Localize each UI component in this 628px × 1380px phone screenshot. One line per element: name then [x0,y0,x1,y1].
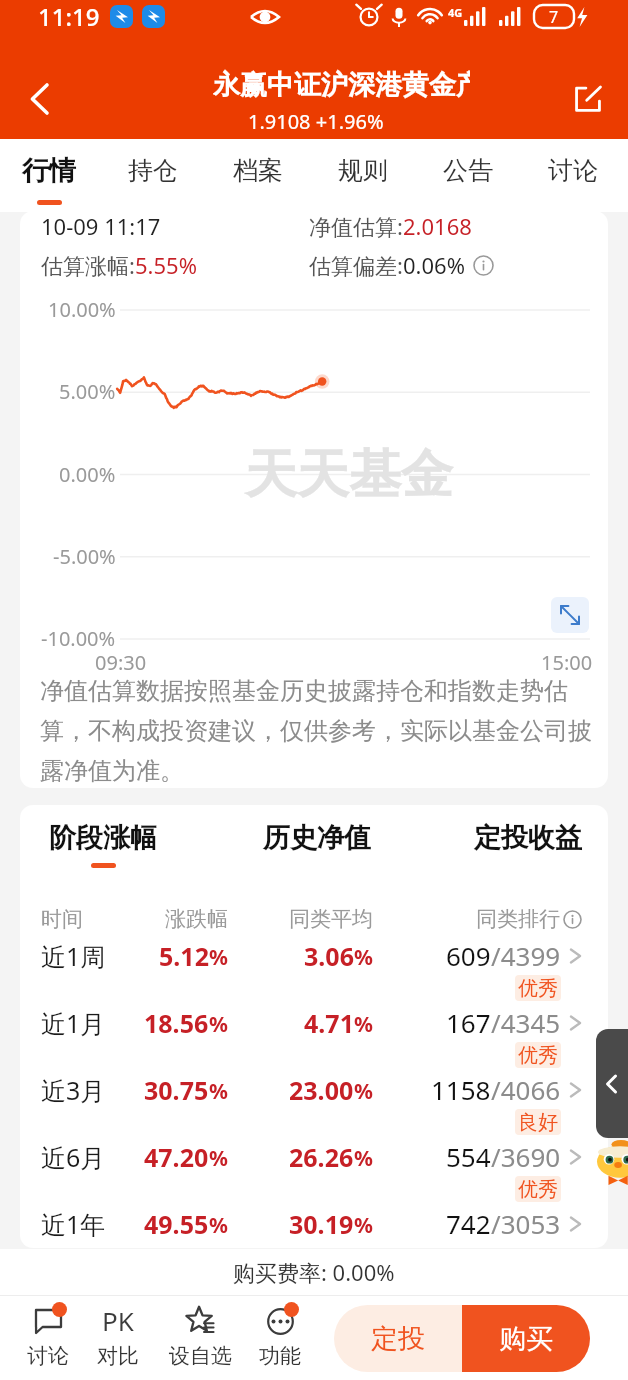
button[interactable]: 阶段涨幅 [20,805,186,878]
staticText: 讨论 [548,155,598,186]
staticText: 5.12 [159,939,209,973]
button[interactable]: 定投 [334,1305,462,1372]
staticText: 609 [446,938,491,973]
staticText: 净值估算数据按照基金历史披露持仓和指数走势估 [40,676,568,706]
staticText: % [354,1144,373,1173]
button[interactable]: 持仓 [101,139,205,212]
staticText: -5.00% [53,543,116,570]
staticText: 对比 [97,1343,139,1369]
staticText: 购买费率: 0.00% [233,1257,395,1287]
staticText: % [354,1010,373,1039]
staticText: 购买 [499,1322,553,1356]
button[interactable]: 讨论 [16,1300,79,1369]
staticText: 0.06% [403,250,465,280]
staticText: 10-09 11:17 [41,212,161,241]
button[interactable]: 公告 [415,139,520,212]
staticText: 近6月 [41,1140,138,1174]
staticText: 近1周 [41,939,138,973]
staticText: 估算偏差: [309,250,403,280]
staticText: 功能 [259,1343,301,1369]
staticText: 时间 [41,906,138,932]
button[interactable]: PK [86,1300,150,1369]
staticText: 讨论 [27,1343,69,1369]
staticText: 2.0168 [403,212,472,241]
staticText: 5.00% [59,378,116,405]
staticText: 49.55 [144,1207,209,1241]
staticText: 554 [446,1139,491,1174]
staticText: /3053 [491,1206,561,1241]
staticText: 净值估算: [309,212,403,241]
staticText: 4.71 [304,1006,354,1040]
button[interactable]: 近1月 [20,999,608,1066]
staticText: 167 [446,1005,491,1040]
staticText: 30.75 [144,1073,209,1107]
staticText: 742 [446,1206,491,1241]
button[interactable]: Share [562,73,614,125]
staticText: 档案 [233,155,283,186]
button[interactable]: 近3月 [20,1066,608,1133]
staticText: 0.00% [59,461,116,488]
staticText: PK [102,1303,134,1338]
button[interactable]: 设自选 [158,1300,242,1369]
staticText: 阶段涨幅 [49,821,157,855]
button[interactable]: 档案 [205,139,310,212]
button[interactable]: Fullscreen chart [551,597,589,633]
staticText: 1158 [431,1072,491,1107]
staticText: 永赢中证沪深港黄金产 [213,68,470,102]
staticText: 47.20 [144,1140,209,1174]
staticText: 规则 [338,155,388,186]
staticText: % [209,1211,228,1240]
staticText: 行情 [22,154,76,188]
staticText: 设自选 [169,1343,232,1369]
staticText: 5.55% [135,250,197,280]
staticText: 良好 [518,1110,558,1135]
staticText: 定投 [371,1322,425,1356]
staticText: 近1年 [41,1207,138,1241]
button[interactable]: 功能 [248,1300,312,1369]
staticText: -10.00% [41,625,116,652]
button[interactable]: 近1周 [20,932,608,999]
staticText: 7 [549,6,559,28]
staticText: 优秀 [518,1043,558,1068]
button[interactable]: 近6月 [20,1133,608,1200]
staticText: 涨跌幅 [138,906,228,932]
staticText: 同类排行 [476,906,560,932]
staticText: 09:30 [95,649,147,676]
staticText: 23.00 [289,1073,354,1107]
staticText: 15:00 [541,649,593,676]
staticText: 近1月 [41,1006,138,1040]
staticText: % [354,1211,373,1240]
button[interactable]: 历史净值 [186,805,448,878]
staticText: 持仓 [128,155,178,186]
staticText: 近3月 [41,1073,138,1107]
button[interactable]: 定投收益 [448,805,608,878]
staticText: 同类平均 [228,906,373,932]
staticText: 3.06 [304,939,354,973]
button[interactable]: 近1年 [20,1200,608,1248]
staticText: % [354,1077,373,1106]
staticText: 估算涨幅: [41,250,135,280]
staticText: 公告 [443,155,493,186]
staticText: /4399 [491,938,561,973]
staticText: 1.9108 +1.96% [248,108,384,135]
staticText: 定投收益 [474,821,582,855]
staticText: 30.19 [289,1207,354,1241]
staticText: 算，不构成投资建议，仅供参考，实际以基金公司披 [40,716,592,746]
staticText: 露净值为准。 [40,756,184,786]
staticText: % [209,943,228,972]
staticText: % [209,1010,228,1039]
staticText: 4G [448,5,463,20]
staticText: % [209,1077,228,1106]
button[interactable]: 讨论 [520,139,625,212]
button[interactable]: 规则 [310,139,415,212]
staticText: 历史净值 [263,821,371,855]
button[interactable]: 行情 [0,139,101,212]
button[interactable]: Expand panel [596,1029,628,1138]
staticText: 18.56 [144,1006,209,1040]
staticText: /4066 [491,1072,561,1107]
button[interactable]: Back [14,73,66,125]
button[interactable]: 购买 [462,1305,590,1372]
staticText: 11:19 [38,0,100,33]
staticText: % [354,943,373,972]
staticText: 10.00% [48,296,116,323]
